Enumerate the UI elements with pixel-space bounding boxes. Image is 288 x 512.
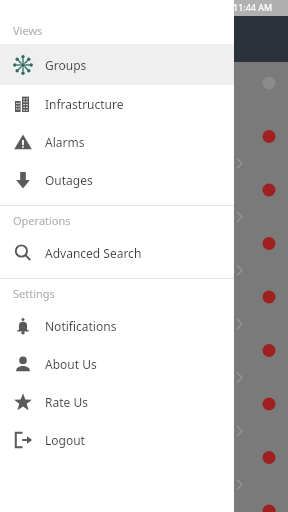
button[interactable]: Rate Us: [0, 383, 234, 421]
staticText: Advanced Search: [45, 245, 142, 261]
staticText: Alarms: [45, 134, 85, 150]
staticText: Logout: [45, 432, 85, 448]
button[interactable]: Logout: [0, 421, 234, 459]
staticText: Outages: [45, 172, 93, 188]
staticText: About Us: [45, 356, 97, 372]
staticText: Views: [13, 23, 43, 38]
button[interactable]: About Us: [0, 345, 234, 383]
button[interactable]: Outages: [0, 161, 234, 199]
button[interactable]: Infrastructure: [0, 85, 234, 123]
button[interactable]: Notifications: [0, 307, 234, 345]
staticText: 11:44 AM: [233, 1, 273, 13]
staticText: Notifications: [45, 318, 117, 334]
button[interactable]: Groups: [0, 44, 234, 85]
staticText: Groups: [45, 57, 87, 73]
staticText: Settings: [13, 286, 55, 301]
staticText: Infrastructure: [45, 96, 124, 112]
button[interactable]: Advanced Search: [0, 234, 234, 272]
button[interactable]: Alarms: [0, 123, 234, 161]
staticText: Rate Us: [45, 394, 88, 410]
staticText: Operations: [13, 213, 71, 228]
